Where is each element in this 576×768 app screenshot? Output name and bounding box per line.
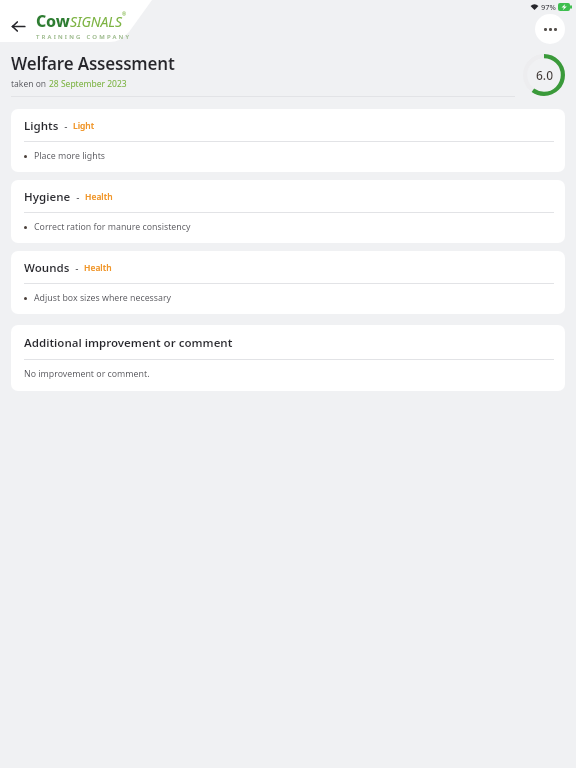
staticText: Hygiene <box>24 189 71 205</box>
staticText: SIGNALS <box>70 12 122 31</box>
staticText: - <box>59 119 73 133</box>
staticText: No improvement or comment. <box>24 368 150 380</box>
staticText: 28 September 2023 <box>49 78 127 90</box>
staticText: Light <box>73 120 95 132</box>
staticText: 97% <box>541 2 556 12</box>
staticText: Cow <box>36 10 70 32</box>
staticText: 6.0 <box>536 67 553 83</box>
staticText: Correct ration for manure consistency <box>34 221 191 233</box>
staticText: Wounds <box>24 260 70 276</box>
staticText: TRAINING COMPANY <box>36 33 132 41</box>
staticText: Welfare Assessment <box>11 52 175 75</box>
staticText: Additional improvement or comment <box>24 335 233 351</box>
staticText: Lights <box>24 118 59 134</box>
button[interactable]: Wounds <box>11 251 565 314</box>
staticText: Adjust box sizes where necessary <box>34 292 172 304</box>
staticText: taken on <box>11 78 49 90</box>
staticText: - <box>71 190 85 204</box>
staticText: Health <box>84 262 112 274</box>
button[interactable]: Additional improvement or comment <box>11 325 565 391</box>
button[interactable]: Lights <box>11 109 565 172</box>
staticText: Health <box>85 191 113 203</box>
button[interactable]: Back <box>4 12 32 40</box>
staticText: - <box>70 261 84 275</box>
staticText: Place more lights <box>34 150 106 162</box>
button[interactable]: Hygiene <box>11 180 565 243</box>
staticText: ® <box>122 11 127 18</box>
button[interactable]: More options <box>535 14 565 44</box>
